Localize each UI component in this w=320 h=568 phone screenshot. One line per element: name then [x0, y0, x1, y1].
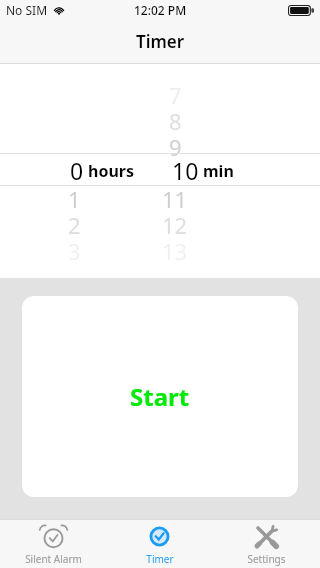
staticText: 7	[169, 80, 182, 104]
staticText: No SIM	[6, 2, 48, 18]
staticText: min	[203, 160, 234, 182]
staticText: 12:02 PM	[134, 2, 187, 18]
staticText: Settings	[247, 552, 286, 566]
other: Settings	[253, 523, 280, 550]
staticText: 0	[70, 155, 84, 185]
staticText: 2	[68, 210, 81, 234]
button[interactable]: Start	[22, 296, 298, 497]
staticText: 9	[169, 132, 182, 156]
button[interactable]: Settings	[213, 520, 320, 568]
staticText: 13	[162, 236, 188, 260]
staticText: 8	[169, 106, 182, 130]
staticText: hours	[88, 160, 134, 182]
other: Silent Alarm	[40, 523, 67, 550]
button[interactable]: 10	[0, 155, 320, 185]
staticText: Timer	[136, 30, 185, 53]
staticText: 12	[162, 210, 188, 234]
staticText: Start	[130, 380, 190, 413]
button[interactable]: 0	[0, 155, 320, 185]
staticText: Silent Alarm	[25, 552, 82, 566]
staticText: 10	[172, 155, 199, 185]
staticText: 3	[68, 236, 81, 260]
staticText: 1	[68, 184, 81, 208]
button[interactable]: Silent Alarm	[0, 520, 106, 568]
button[interactable]: Timer	[106, 520, 213, 568]
staticText: 11	[162, 184, 188, 208]
other: Timer	[146, 523, 173, 550]
staticText: Timer	[146, 552, 174, 566]
